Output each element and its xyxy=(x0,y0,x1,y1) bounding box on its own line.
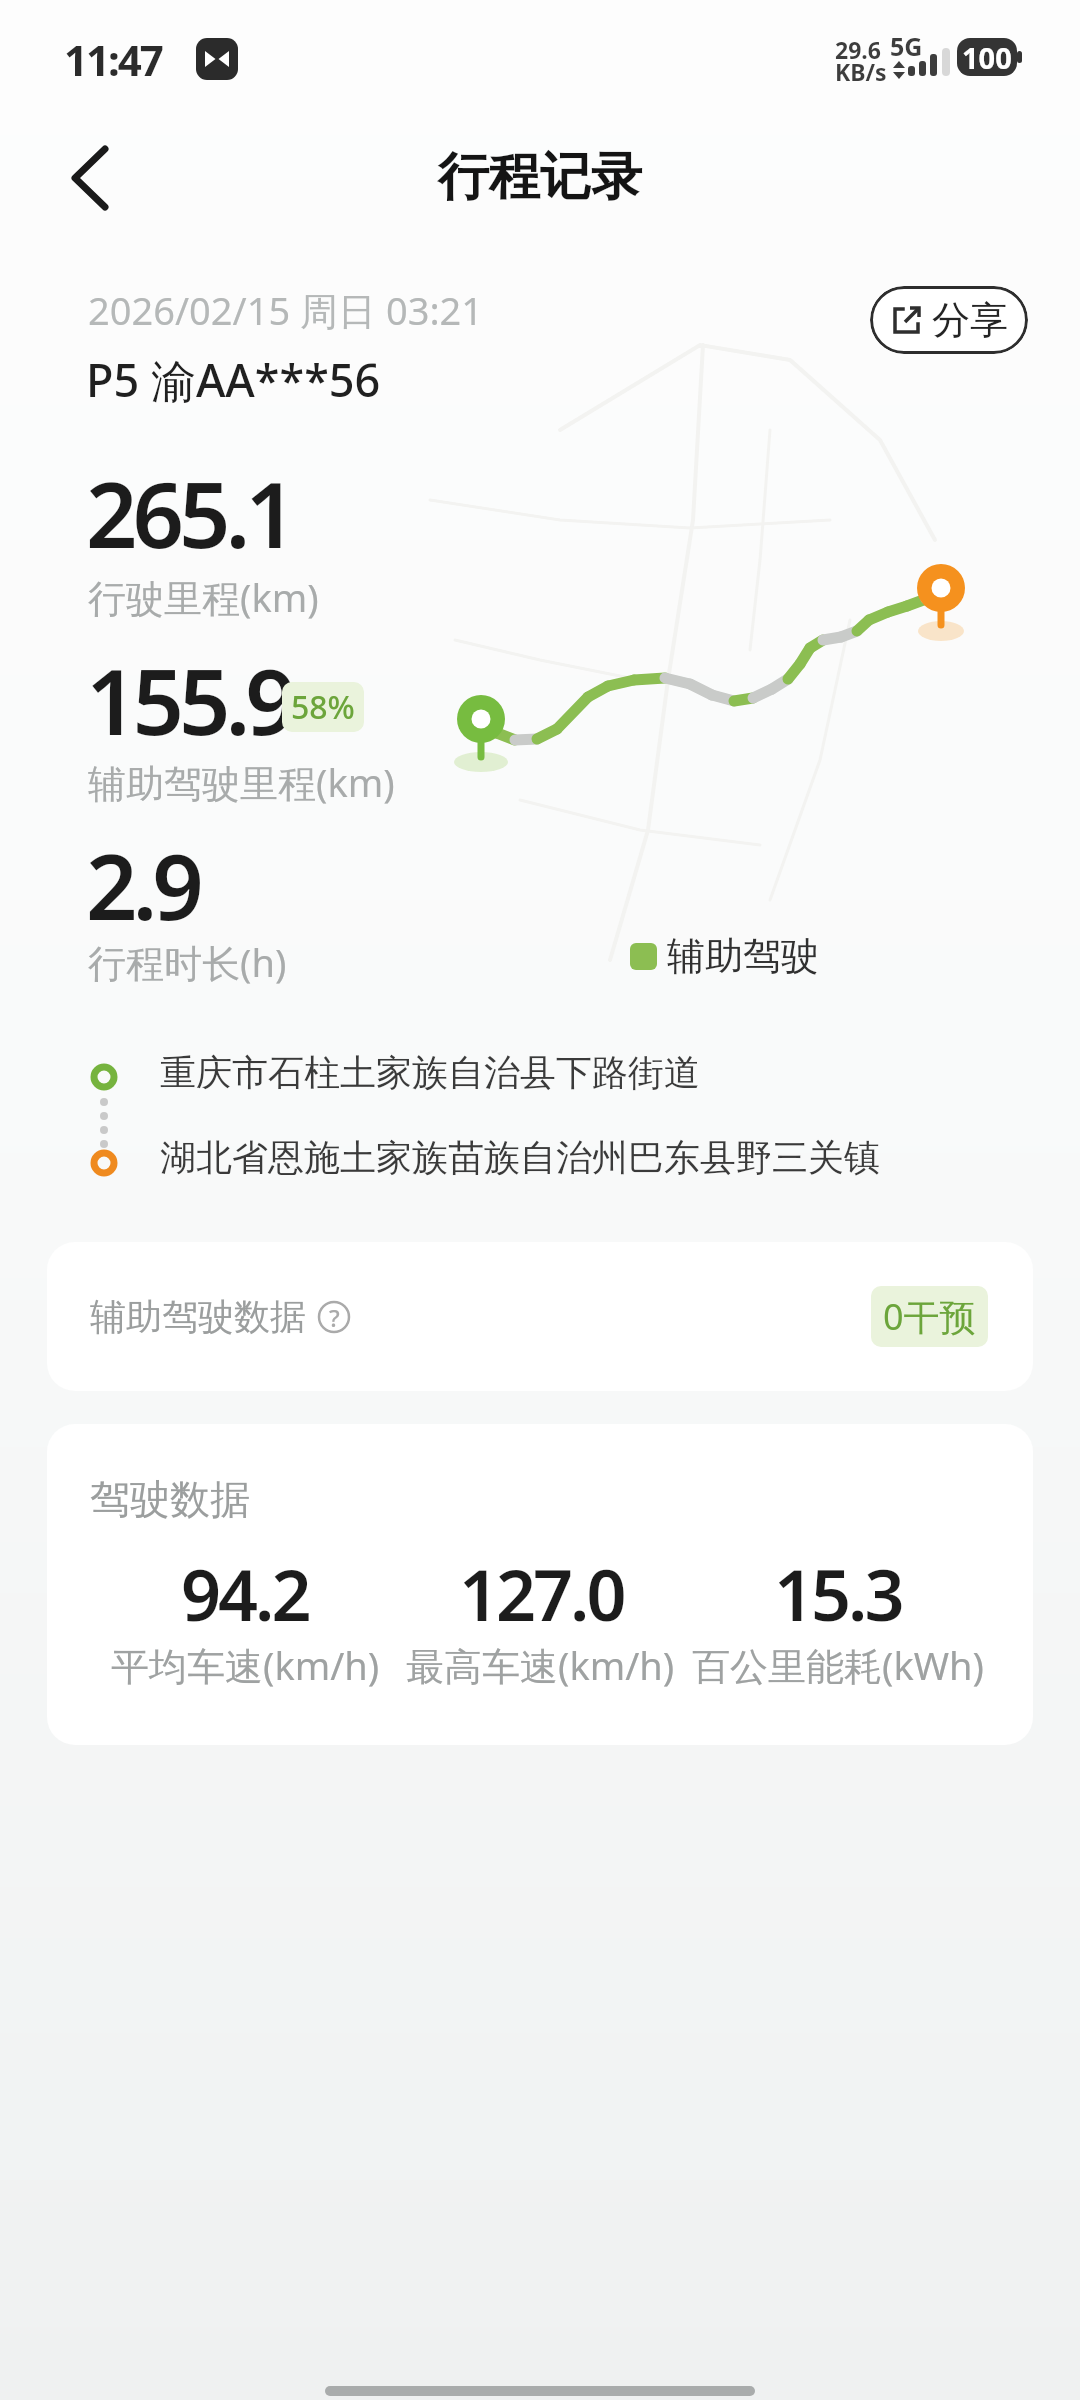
staticText: 驾驶数据 xyxy=(90,1474,250,1524)
button[interactable]: ? xyxy=(316,1299,352,1335)
staticText: 辅助驾驶 xyxy=(667,932,819,980)
button[interactable]: 分享 xyxy=(870,286,1028,354)
staticText: 辅助驾驶数据 xyxy=(90,1294,306,1339)
staticText: 行驶里程(km) xyxy=(88,571,319,623)
staticText: 155.9 xyxy=(86,639,292,762)
staticText: P5 渝AA***56 xyxy=(86,349,381,410)
staticText: 100 xyxy=(962,38,1012,76)
staticText: 行程记录 xyxy=(438,145,642,209)
staticText: 行程时长(h) xyxy=(88,936,287,988)
staticText: 2.9 xyxy=(86,824,199,947)
staticText: 29.6 xyxy=(835,34,881,65)
staticText: 辅助驾驶里程(km) xyxy=(88,756,395,808)
button[interactable]: 辅助驾驶数据 xyxy=(47,1242,1033,1391)
staticText: 2026/02/15 周日 03:21 xyxy=(88,284,484,336)
staticText: 58% xyxy=(291,685,355,729)
staticText: 265.1 xyxy=(86,452,292,575)
staticText: KB/s xyxy=(835,56,887,87)
staticText: ? xyxy=(329,1301,340,1334)
staticText: 5G xyxy=(890,29,923,63)
staticText: 127.0 xyxy=(459,1546,624,1641)
staticText: 15.3 xyxy=(774,1546,902,1641)
staticText: 94.2 xyxy=(181,1546,309,1641)
staticText: 分享 xyxy=(932,296,1008,344)
staticText: 11:47 xyxy=(64,31,162,88)
staticText: 重庆市石柱土家族自治县下路街道 xyxy=(160,1050,700,1095)
staticText: 最高车速(km/h) xyxy=(406,1639,675,1691)
staticText: 平均车速(km/h) xyxy=(111,1639,380,1691)
staticText: 0干预 xyxy=(883,1292,976,1341)
staticText: 百公里能耗(kWh) xyxy=(692,1639,984,1691)
button[interactable] xyxy=(58,142,130,214)
staticText: 湖北省恩施土家族苗族自治州巴东县野三关镇 xyxy=(160,1135,880,1180)
